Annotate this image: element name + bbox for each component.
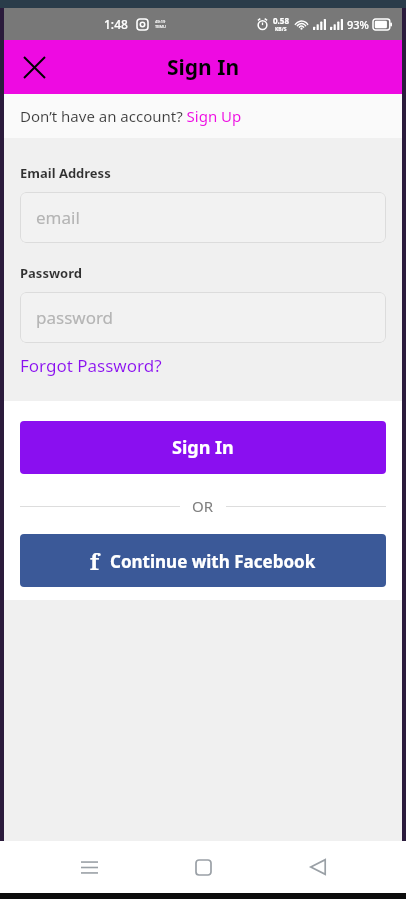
button[interactable]: Don’t have an account? Sign Up (4, 94, 402, 138)
staticText: Forgot Password? (20, 354, 162, 377)
button[interactable]: Sign In (20, 421, 386, 474)
staticText: TEMU (155, 24, 166, 29)
staticText: 49:19 (155, 19, 166, 24)
staticText: f (90, 546, 99, 576)
button[interactable]: f (20, 534, 386, 587)
staticText: email (36, 206, 80, 229)
staticText: KB/S (275, 26, 287, 33)
staticText: OR (192, 496, 214, 516)
staticText: 93% (347, 17, 369, 32)
staticText: Sign In (167, 53, 240, 82)
button[interactable]: Forgot Password? (20, 354, 162, 377)
button[interactable]: Recent apps (63, 841, 115, 893)
staticText: Continue with Facebook (110, 550, 316, 573)
staticText: Email Address (20, 164, 111, 182)
staticText: 0.58 (273, 15, 289, 26)
button[interactable]: email (20, 192, 386, 243)
staticText: Password (20, 264, 82, 282)
button[interactable]: Close (12, 45, 56, 89)
button[interactable]: Back (292, 841, 344, 893)
staticText: Don’t have an account? Sign Up (20, 106, 242, 126)
staticText: Sign In (172, 435, 234, 460)
button[interactable]: Home (177, 841, 229, 893)
button[interactable]: password (20, 292, 386, 343)
staticText: password (36, 306, 114, 329)
staticText: 1:48 (104, 16, 128, 32)
